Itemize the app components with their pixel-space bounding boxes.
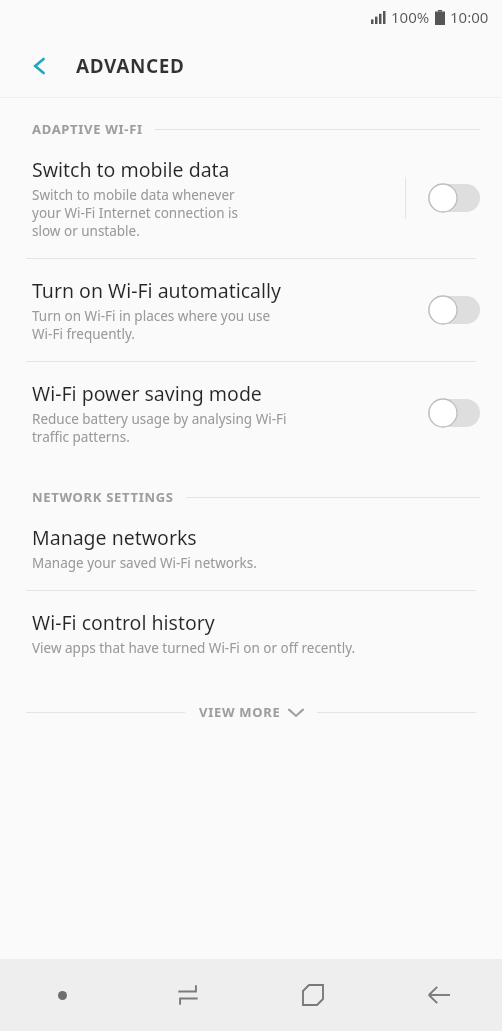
button[interactable]: Recents xyxy=(125,959,250,1031)
staticText: VIEW MORE xyxy=(199,703,281,721)
staticText: Manage your saved Wi-Fi networks. xyxy=(32,554,257,572)
staticText: slow or unstable. xyxy=(32,222,140,240)
button[interactable]: Manage networks xyxy=(0,506,502,590)
staticText: Turn on Wi-Fi automatically xyxy=(32,277,282,304)
button[interactable]: Wi-Fi control history xyxy=(0,591,502,675)
staticText: 10:00 xyxy=(450,7,489,27)
staticText: ADAPTIVE WI-FI xyxy=(32,120,143,138)
staticText: traffic patterns. xyxy=(32,428,130,446)
staticText: Switch to mobile data xyxy=(32,156,230,183)
staticText: NETWORK SETTINGS xyxy=(32,488,174,506)
staticText: ADVANCED xyxy=(76,53,185,79)
button[interactable]: Toggle xyxy=(428,398,480,428)
button[interactable]: Switch to mobile data xyxy=(0,138,502,258)
button[interactable]: Home xyxy=(250,959,376,1031)
staticText: your Wi-Fi Internet connection is xyxy=(32,204,238,222)
button[interactable]: Toggle xyxy=(428,295,480,325)
button[interactable]: Wi-Fi power saving mode xyxy=(0,362,502,464)
staticText: 100% xyxy=(391,7,430,27)
button[interactable]: VIEW MORE xyxy=(0,703,502,721)
button[interactable]: Turn on Wi-Fi automatically xyxy=(0,259,502,361)
button[interactable]: Back xyxy=(376,959,502,1031)
button[interactable]: Toggle xyxy=(428,183,480,213)
staticText: Turn on Wi-Fi in places where you use xyxy=(32,307,271,325)
staticText: Manage networks xyxy=(32,524,197,551)
staticText: Wi-Fi power saving mode xyxy=(32,380,262,407)
staticText: View apps that have turned Wi-Fi on or o… xyxy=(32,639,356,657)
staticText: Switch to mobile data whenever xyxy=(32,186,235,204)
staticText: Wi-Fi frequently. xyxy=(32,325,135,343)
staticText: Reduce battery usage by analysing Wi-Fi xyxy=(32,410,287,428)
button[interactable]: Navigate up xyxy=(18,44,62,88)
staticText: Wi-Fi control history xyxy=(32,609,215,636)
